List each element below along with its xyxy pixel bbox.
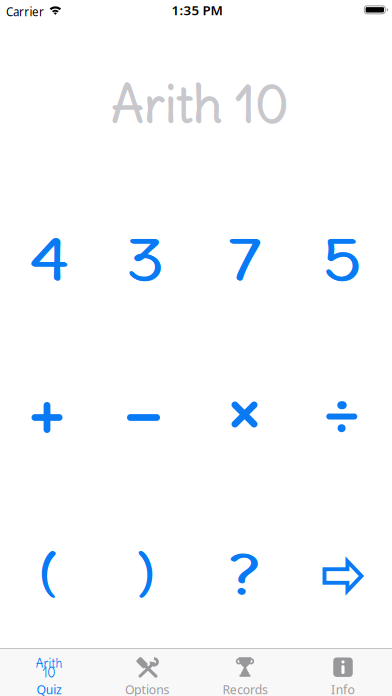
- staticText: 4: [32, 223, 65, 295]
- staticText: 5: [326, 224, 359, 296]
- staticText: 1:35 PM: [171, 1, 222, 19]
- button[interactable]: Minus: [98, 351, 196, 481]
- staticText: ): [140, 541, 154, 599]
- staticText: (: [40, 540, 54, 599]
- staticText: Info: [330, 680, 356, 696]
- staticText: Options: [123, 680, 171, 696]
- staticText: 7: [230, 223, 258, 295]
- staticText: 10: [41, 662, 57, 682]
- staticText: ?: [232, 543, 255, 608]
- staticText: Records: [220, 680, 269, 696]
- button[interactable]: 5: [294, 195, 392, 325]
- button[interactable]: Arith: [0, 649, 98, 696]
- button[interactable]: 4: [0, 195, 98, 325]
- staticText: Carrier: [6, 2, 50, 20]
- button[interactable]: Options: [98, 649, 196, 696]
- staticText: 5: [325, 223, 358, 295]
- staticText: (: [41, 541, 55, 599]
- staticText: 3: [129, 224, 162, 296]
- staticText: 4: [33, 224, 66, 296]
- staticText: ): [139, 540, 153, 599]
- button[interactable]: Divide: [294, 351, 392, 481]
- staticText: Arith: [33, 654, 64, 672]
- staticText: Arith 10: [111, 72, 289, 137]
- button[interactable]: Plus: [0, 351, 98, 481]
- staticText: 5: [325, 224, 358, 296]
- staticText: ): [139, 540, 153, 599]
- staticText: Quiz: [35, 680, 62, 696]
- staticText: Arith 10: [110, 72, 288, 136]
- staticText: 7: [231, 224, 259, 296]
- staticText: (: [41, 540, 55, 599]
- staticText: 4: [33, 224, 66, 296]
- staticText: ?: [232, 543, 255, 607]
- button[interactable]: Next: [294, 509, 392, 639]
- staticText: 7: [231, 224, 259, 296]
- staticText: 3: [128, 223, 161, 295]
- staticText: Arith 10: [111, 72, 289, 137]
- button[interactable]: (: [0, 509, 98, 639]
- button[interactable]: Records: [196, 649, 294, 696]
- button[interactable]: 7: [196, 195, 294, 325]
- staticText: 3: [129, 224, 162, 296]
- button[interactable]: Info: [294, 649, 392, 696]
- button[interactable]: ): [98, 509, 196, 639]
- button[interactable]: 3: [98, 195, 196, 325]
- button[interactable]: Multiply: [196, 351, 294, 481]
- button[interactable]: ?: [196, 509, 294, 639]
- staticText: ?: [233, 544, 256, 608]
